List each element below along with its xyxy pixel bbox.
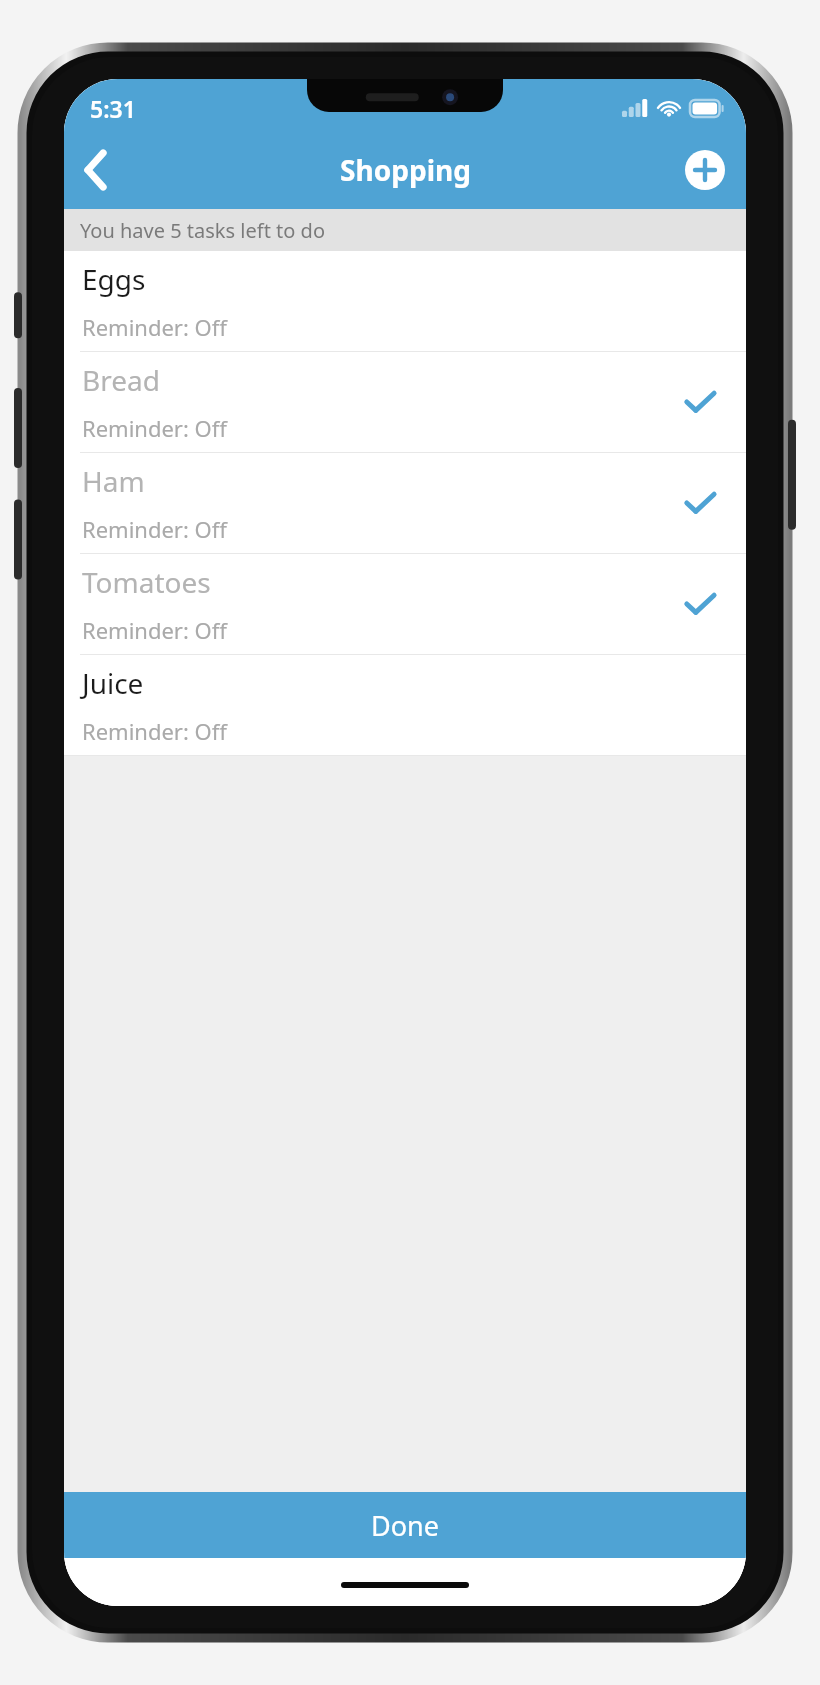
- staticText: Ham: [82, 462, 145, 500]
- staticText: Reminder: Off: [82, 615, 227, 645]
- staticText: Reminder: Off: [82, 312, 227, 342]
- staticText: Reminder: Off: [82, 716, 227, 746]
- button[interactable]: Done: [64, 1492, 746, 1558]
- staticText: Reminder: Off: [82, 413, 227, 443]
- button[interactable]: Back: [64, 138, 128, 202]
- staticText: Done: [371, 1507, 439, 1544]
- button[interactable]: Bread: [64, 352, 746, 452]
- button[interactable]: Juice: [64, 655, 746, 755]
- staticText: Shopping: [340, 151, 471, 189]
- staticText: Juice: [82, 664, 144, 702]
- staticText: You have 5 tasks left to do: [80, 217, 325, 244]
- button[interactable]: Ham: [64, 453, 746, 553]
- staticText: Tomatoes: [82, 563, 211, 601]
- staticText: Eggs: [82, 260, 146, 298]
- button[interactable]: Add task: [678, 143, 732, 197]
- button[interactable]: Eggs: [64, 251, 746, 351]
- staticText: Reminder: Off: [82, 514, 227, 544]
- button[interactable]: Tomatoes: [64, 554, 746, 654]
- staticText: Bread: [82, 361, 160, 399]
- staticText: 5:31: [90, 93, 136, 124]
